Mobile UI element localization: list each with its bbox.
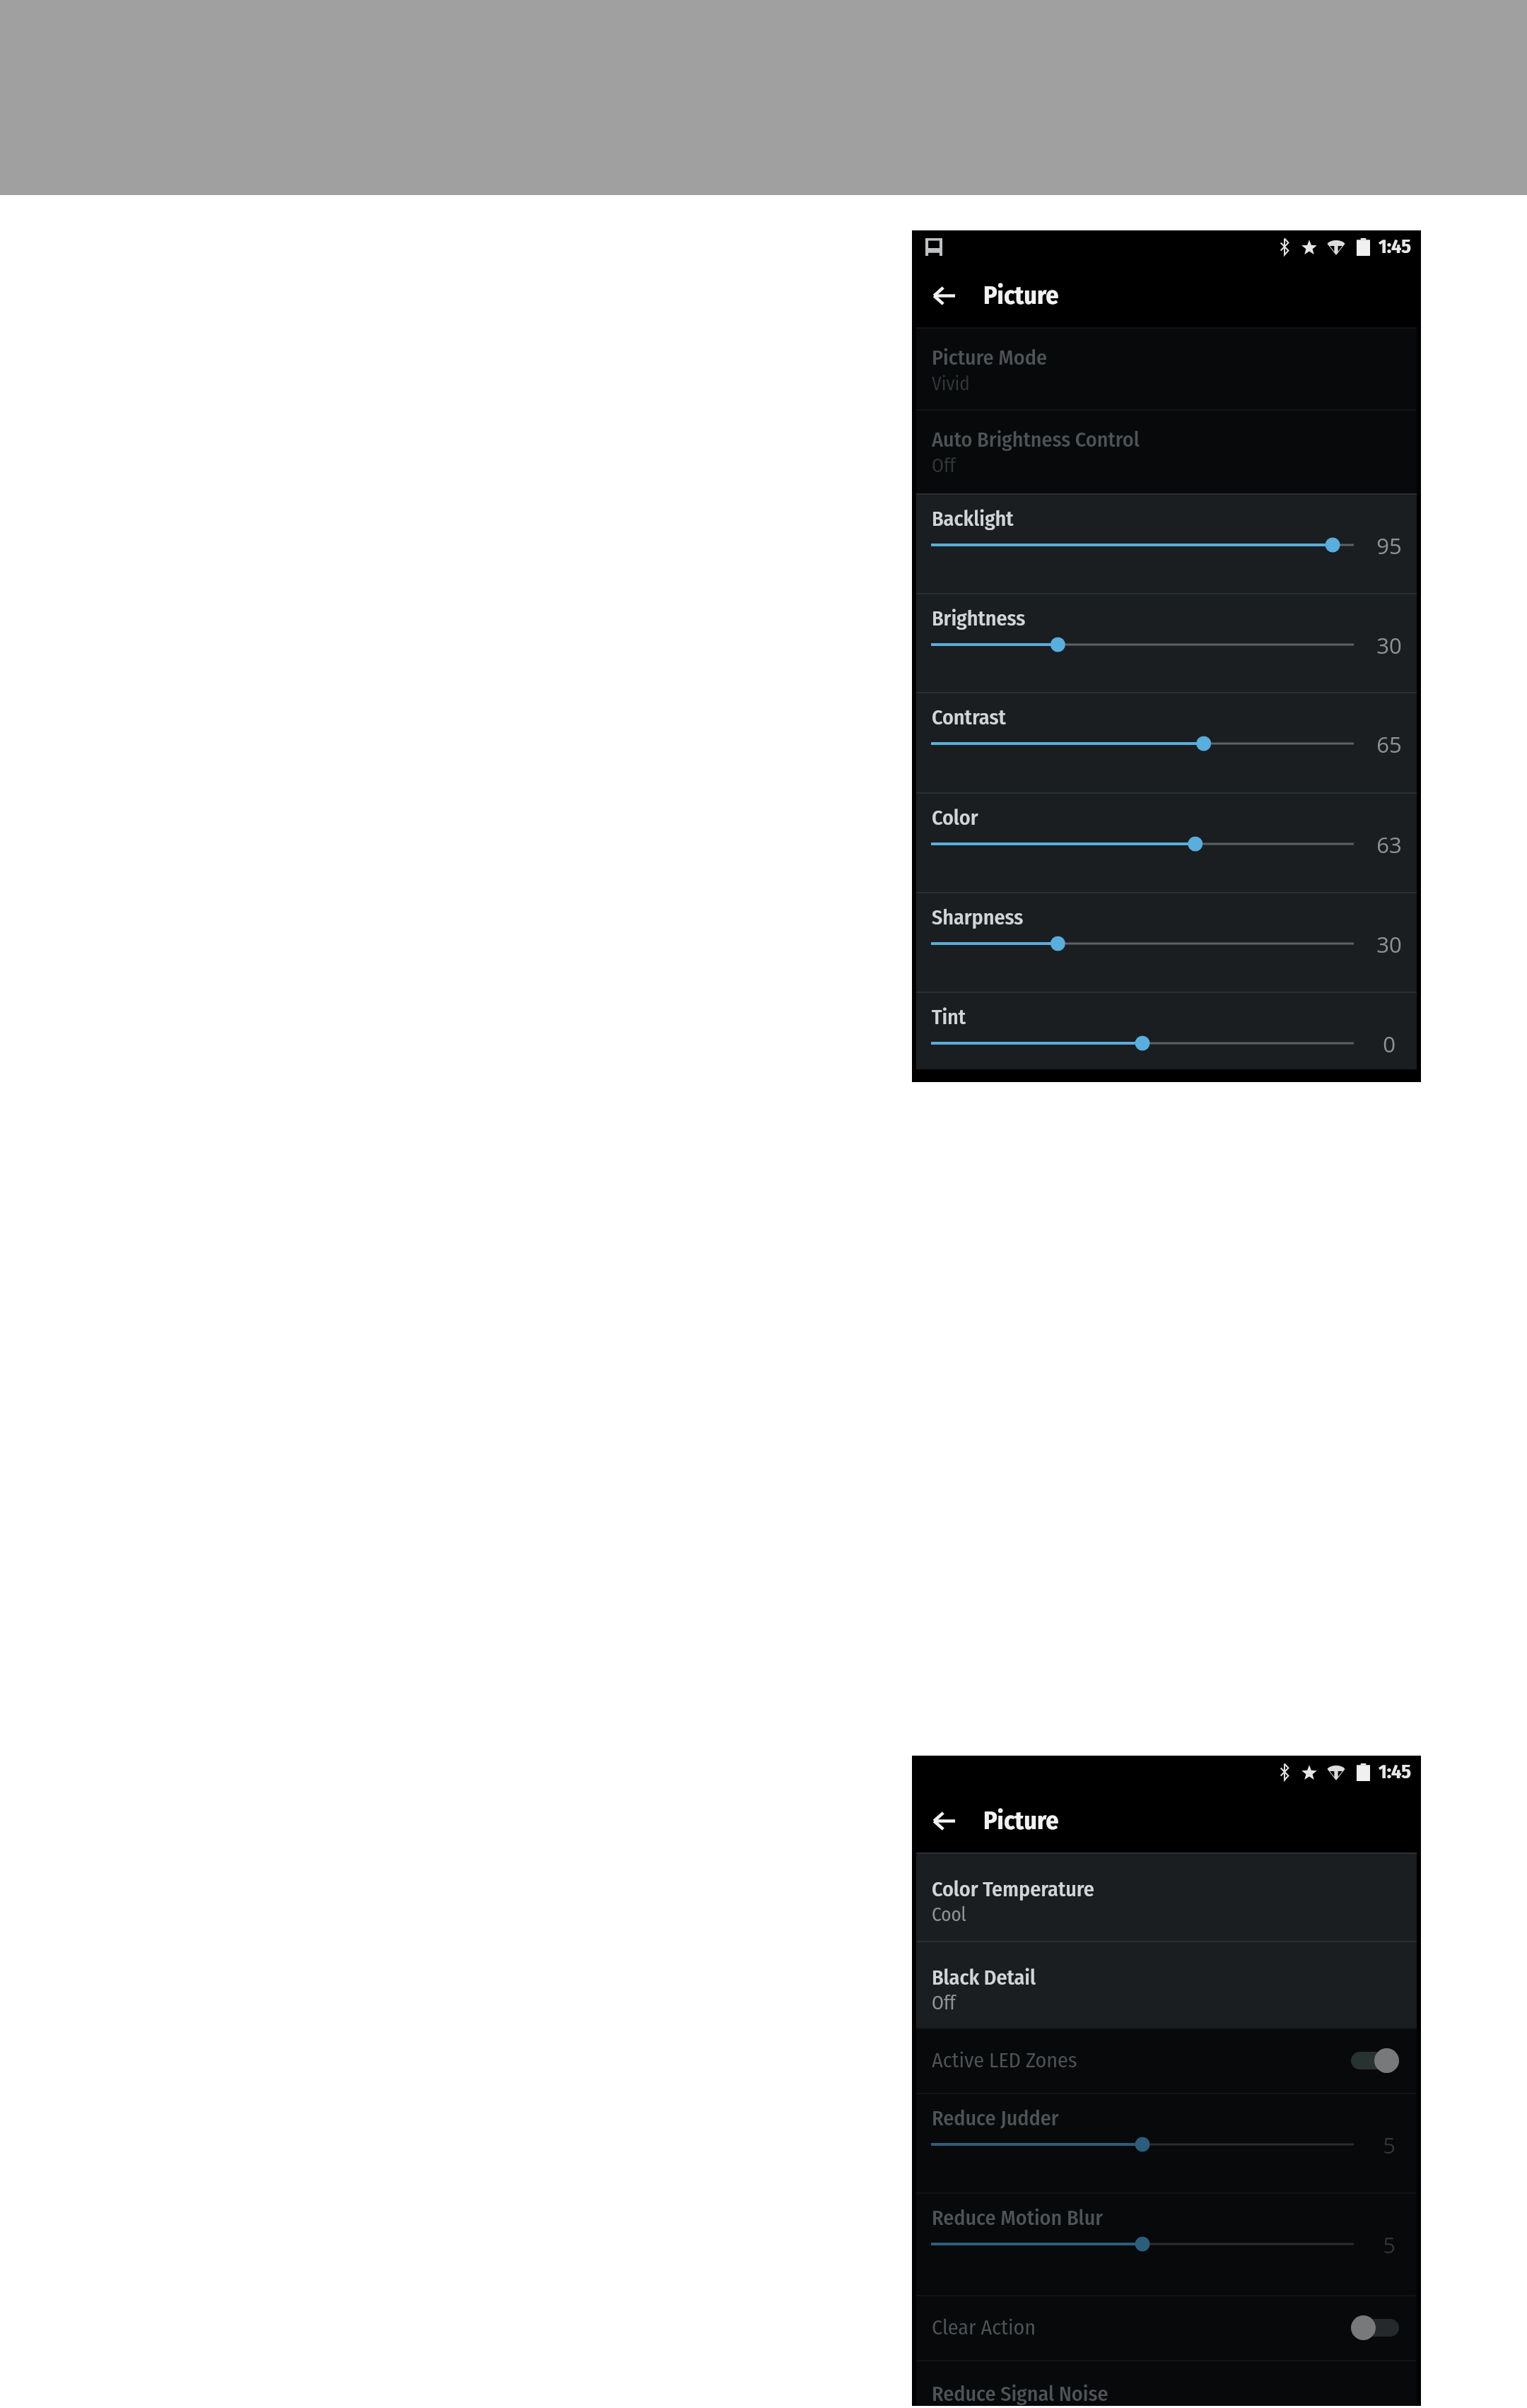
staticText: Clear Action	[932, 2315, 1036, 2340]
staticText: Off	[932, 1992, 956, 2014]
button[interactable]: Tint	[916, 992, 1417, 1069]
button[interactable]: Reduce Signal Noise	[916, 2360, 1417, 2406]
staticText: Brightness	[932, 606, 1026, 631]
button[interactable]: Back	[927, 278, 961, 312]
staticText: 5	[1362, 2230, 1417, 2260]
staticText: Sharpness	[932, 905, 1024, 930]
staticText: Tint	[932, 1004, 966, 1030]
button[interactable]: Brightness	[916, 593, 1417, 692]
button[interactable]: Auto Brightness Control	[916, 409, 1417, 493]
staticText: Color	[932, 805, 978, 830]
button[interactable]: Clear Action	[916, 2295, 1417, 2360]
staticText: Active LED Zones	[932, 2048, 1077, 2073]
button[interactable]: Reduce Judder	[916, 2093, 1417, 2192]
staticText: Backlight	[932, 506, 1014, 531]
staticText: Reduce Judder	[932, 2105, 1059, 2131]
button[interactable]: Picture Mode	[916, 327, 1417, 409]
staticText: 95	[1362, 531, 1417, 560]
staticText: Reduce Signal Noise	[932, 2381, 1108, 2407]
staticText: Picture	[983, 1805, 1059, 1836]
button[interactable]: Color	[916, 792, 1417, 892]
staticText: 63	[1362, 830, 1417, 859]
button[interactable]: Black Detail	[916, 1941, 1417, 2028]
button[interactable]: Color Temperature	[916, 1852, 1417, 1941]
button[interactable]: Reduce Motion Blur	[916, 2192, 1417, 2295]
staticText: 5	[1362, 2130, 1417, 2160]
staticText: Color Temperature	[932, 1877, 1094, 1902]
staticText: Off	[932, 454, 956, 477]
staticText: 30	[1362, 630, 1417, 660]
button[interactable]: Contrast	[916, 692, 1417, 792]
staticText: 65	[1362, 729, 1417, 759]
staticText: Cool	[932, 1903, 966, 1926]
staticText: Picture	[983, 280, 1059, 310]
staticText: 0	[1362, 1029, 1417, 1059]
staticText: Auto Brightness Control	[932, 427, 1140, 452]
staticText: Reduce Motion Blur	[932, 2205, 1104, 2231]
button[interactable]: Active LED Zones	[916, 2028, 1417, 2093]
button[interactable]: Back	[927, 1804, 961, 1838]
staticText: Vivid	[932, 372, 970, 395]
staticText: Black Detail	[932, 1965, 1036, 1990]
staticText: Contrast	[932, 705, 1006, 730]
button[interactable]: Backlight	[916, 493, 1417, 593]
staticText: 1:45	[1379, 235, 1411, 259]
button[interactable]: Sharpness	[916, 892, 1417, 992]
staticText: 30	[1362, 929, 1417, 959]
staticText: 1:45	[1379, 1760, 1411, 1784]
staticText: Picture Mode	[932, 345, 1047, 370]
